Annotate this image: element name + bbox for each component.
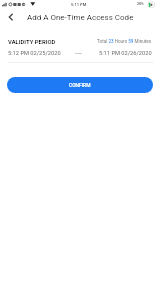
button[interactable]: CONFIRM <box>7 77 153 93</box>
staticText: 5:11 PM 02/26/2020 <box>99 50 152 57</box>
staticText: 5:12 PM 02/25/2020 <box>8 50 61 57</box>
button[interactable]: Back <box>2 11 19 29</box>
staticText: CONFIRM <box>69 82 91 88</box>
staticText: 28% <box>137 2 144 6</box>
staticText: VALIDITY PERIOD <box>8 39 56 46</box>
staticText: 5:11 PM <box>71 2 87 7</box>
staticText: Add A One-Time Access Code <box>27 13 134 22</box>
staticText: Total 23 Hours 59 Minutes <box>97 39 152 44</box>
